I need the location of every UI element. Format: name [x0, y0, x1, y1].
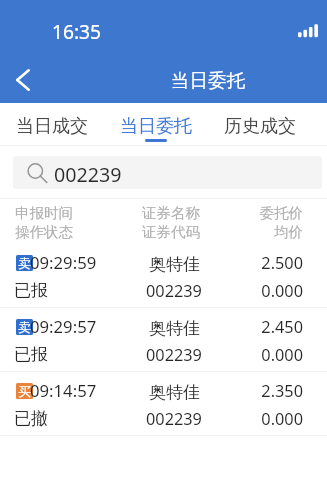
staticText: 奥特佳	[149, 318, 200, 339]
staticText: 当日成交	[16, 115, 88, 138]
staticText: 16:35	[52, 18, 102, 44]
button[interactable]: 当日成交	[0, 104, 104, 145]
staticText: 已撤	[14, 408, 48, 429]
staticText: 已报	[14, 280, 48, 301]
staticText: 0.000	[200, 408, 303, 430]
staticText: 操作状态	[15, 223, 73, 241]
button[interactable]: 卖	[0, 308, 327, 372]
staticText: 当日委托	[120, 115, 192, 138]
button[interactable]: 当日委托	[104, 104, 208, 145]
button[interactable]: 历史成交	[208, 104, 312, 145]
staticText: 证券代码	[142, 223, 200, 241]
staticText: 0.000	[200, 344, 303, 366]
staticText: 证券名称	[142, 204, 200, 222]
staticText: 002239	[54, 161, 122, 188]
staticText: 002239	[146, 344, 202, 366]
staticText: 当日委托	[171, 69, 245, 92]
staticText: 002239	[146, 280, 202, 302]
button[interactable]: Back	[3, 60, 43, 100]
button[interactable]: Search stock code	[13, 156, 322, 189]
staticText: 002239	[146, 408, 202, 430]
staticText: 奥特佳	[149, 254, 200, 275]
staticText: 委托价	[200, 204, 303, 222]
button[interactable]: 卖	[0, 244, 327, 308]
button[interactable]: 买	[0, 372, 327, 436]
staticText: 历史成交	[224, 115, 296, 138]
staticText: 奥特佳	[149, 382, 200, 403]
staticText: 申报时间	[15, 204, 73, 222]
staticText: 卖	[18, 319, 31, 335]
staticText: 均价	[200, 223, 303, 241]
staticText: 0.000	[200, 280, 303, 302]
staticText: 2.350	[200, 380, 303, 402]
staticText: 卖	[18, 255, 31, 271]
staticText: 2.450	[200, 316, 303, 338]
staticText: 09:29:57	[30, 315, 97, 338]
staticText: 已报	[14, 344, 48, 365]
staticText: 09:14:57	[30, 379, 97, 402]
staticText: 买	[18, 383, 31, 399]
staticText: 09:29:59	[30, 251, 97, 274]
staticText: 2.500	[200, 252, 303, 274]
